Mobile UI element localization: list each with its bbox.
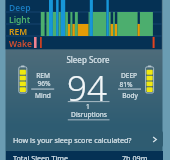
staticText: Body [70,91,170,102]
staticText: Light [9,14,31,26]
staticText: 81% [66,80,170,91]
button[interactable] [6,131,163,147]
staticText: Deep [9,2,31,14]
staticText: How is your sleep score calculated? [13,135,132,145]
staticText: 94 [27,64,147,120]
staticText: 96% [0,79,104,90]
staticText: 7h 09m [122,153,148,160]
staticText: Total Sleep Time [13,153,69,160]
staticText: REM [0,71,103,82]
staticText: REM [9,26,28,38]
staticText: Disruptions [29,110,149,121]
staticText: Wake [9,38,32,50]
staticText: DEEP [69,71,170,82]
staticText: 1 [28,102,148,113]
staticText: Mind [0,91,103,102]
button[interactable] [6,151,163,160]
staticText: Sleep Score [28,54,148,67]
other: More info [150,135,159,144]
